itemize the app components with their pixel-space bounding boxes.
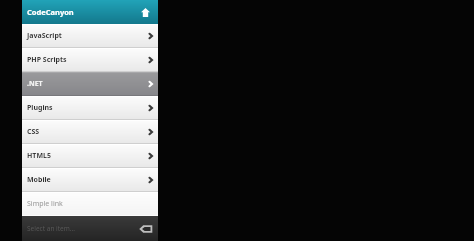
staticText: CSS <box>27 127 40 137</box>
staticText: CodeCanyon <box>27 7 74 17</box>
staticText: Plugins <box>27 103 53 113</box>
staticText: .NET <box>27 79 43 89</box>
staticText: PHP Scripts <box>27 55 67 65</box>
staticText: Select an item... <box>27 224 76 233</box>
button[interactable]: Clear selection <box>139 224 153 234</box>
button[interactable]: Plugins <box>22 96 158 120</box>
button[interactable]: CodeCanyon <box>22 0 158 24</box>
button[interactable]: JavaScript <box>22 24 158 48</box>
staticText: Mobile <box>27 175 51 185</box>
button[interactable]: Select an item... <box>22 216 158 241</box>
button[interactable]: HTML5 <box>22 144 158 168</box>
button[interactable]: Mobile <box>22 168 158 192</box>
button[interactable]: PHP Scripts <box>22 48 158 72</box>
staticText: Simple link <box>27 199 63 209</box>
staticText: JavaScript <box>27 31 62 41</box>
button[interactable]: Simple link <box>22 192 158 215</box>
button[interactable]: Home <box>137 4 153 20</box>
button[interactable]: .NET <box>22 72 158 96</box>
button[interactable]: CSS <box>22 120 158 144</box>
staticText: HTML5 <box>27 151 51 161</box>
